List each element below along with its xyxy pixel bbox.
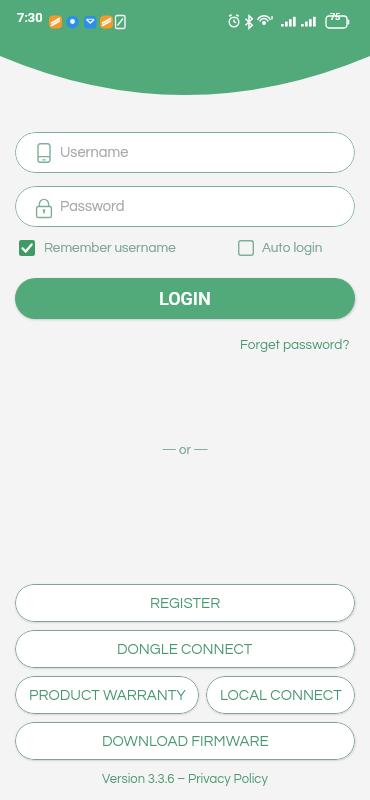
button[interactable]: Remember username (0, 240, 176, 256)
staticText: Remember username (44, 241, 176, 255)
staticText: REGISTER (150, 596, 221, 611)
staticText: Auto login (262, 241, 323, 255)
staticText: — or — (0, 443, 370, 456)
button[interactable]: DONGLE CONNECT (15, 630, 355, 668)
staticText: Password (60, 199, 125, 214)
button[interactable]: REGISTER (15, 584, 355, 622)
staticText: DONGLE CONNECT (117, 642, 253, 657)
staticText: 7:30 (17, 10, 43, 25)
staticText: Username (60, 145, 129, 160)
staticText: PRODUCT WARRANTY (29, 688, 186, 703)
staticText: 75 (330, 12, 341, 23)
staticText: Version 3.3.6 – Privacy Policy (0, 772, 370, 785)
button[interactable]: Auto login (238, 240, 323, 256)
button[interactable]: Password (15, 186, 355, 227)
button[interactable]: LOGIN (15, 278, 355, 319)
staticText: LOCAL CONNECT (220, 688, 342, 703)
staticText: DOWNLOAD FIRMWARE (102, 734, 269, 749)
button[interactable]: PRODUCT WARRANTY (15, 676, 199, 714)
staticText: LOGIN (159, 288, 211, 309)
button[interactable]: LOCAL CONNECT (206, 676, 355, 714)
button[interactable]: Forget password? (240, 336, 370, 354)
button[interactable]: Username (15, 132, 355, 173)
button[interactable]: DOWNLOAD FIRMWARE (15, 722, 355, 760)
